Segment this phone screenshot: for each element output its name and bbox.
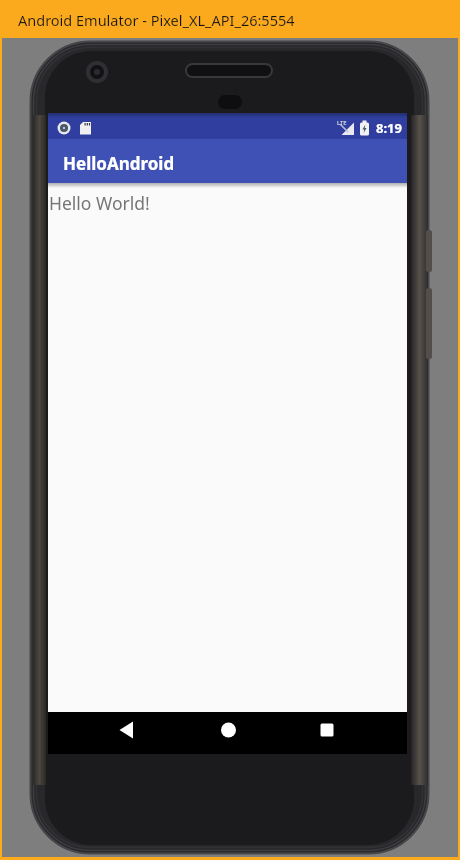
staticText: Hello World! [49,191,150,215]
staticText: HelloAndroid [63,152,175,175]
staticText: 8:19 [376,119,402,137]
staticText: LTE [337,119,347,127]
button[interactable] [102,712,152,754]
button[interactable] [203,712,253,754]
staticText: Android Emulator - Pixel_XL_API_26:5554 [18,10,295,30]
button[interactable] [302,712,352,754]
